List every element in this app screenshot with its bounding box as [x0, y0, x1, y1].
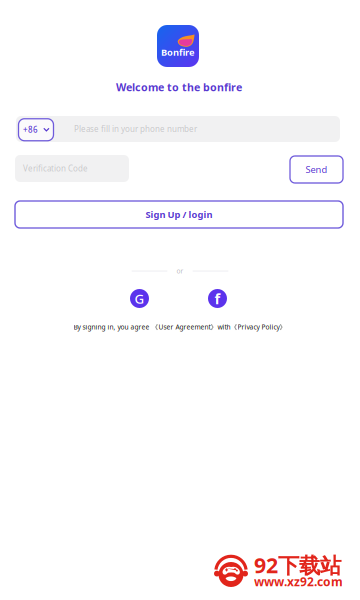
staticText: By signing in, you agree 《User Agreement…: [73, 323, 286, 331]
staticText: Send: [305, 163, 327, 176]
staticText: Verification Code: [23, 163, 88, 174]
staticText: 92下载站: [254, 551, 341, 579]
staticText: G: [134, 290, 144, 307]
button[interactable]: Sign Up / login: [15, 201, 343, 228]
staticText: Sign Up / login: [145, 208, 212, 221]
staticText: or: [176, 267, 183, 275]
staticText: +86: [23, 124, 38, 135]
staticText: f: [214, 289, 220, 308]
button[interactable]: Send: [290, 156, 343, 183]
staticText: www.xz92.com: [254, 573, 343, 589]
button[interactable]: +86: [18, 119, 53, 141]
staticText: Please fill in your phone number: [74, 124, 197, 134]
staticText: Welcome to the bonfire: [116, 80, 242, 94]
button[interactable]: Sign in with Facebook: [208, 289, 227, 308]
staticText: Bonfire: [161, 46, 195, 58]
button[interactable]: Sign in with Google: [130, 289, 149, 308]
